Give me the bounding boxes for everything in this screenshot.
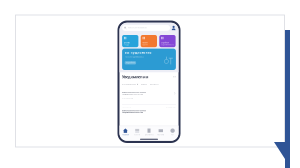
button[interactable]: Документы	[143, 128, 155, 136]
staticText: уведомление ФССП России	[122, 112, 143, 113]
staticText: Услуги	[134, 134, 140, 136]
staticText: вчера в 12:07	[166, 106, 176, 108]
staticText: Все предложения	[125, 51, 152, 54]
staticText: Подробнее	[126, 62, 135, 64]
staticText: Платежи	[157, 134, 164, 136]
staticText: Госуслуги	[122, 106, 131, 108]
staticText: уведомление ФССП России	[122, 93, 143, 95]
button[interactable]: Все	[173, 76, 176, 78]
staticText: Штрафы	[124, 42, 130, 44]
button[interactable]: Госуслуги	[122, 106, 176, 120]
staticText: Налоги	[142, 42, 148, 44]
staticText: Важное	[141, 83, 147, 85]
staticText: Все	[173, 76, 176, 78]
button[interactable]: Профиль	[171, 25, 176, 30]
staticText: Вам направлено электронное	[122, 110, 146, 112]
staticText: Уведомления	[122, 74, 148, 79]
staticText: Госуслуги для бизнеса	[125, 56, 144, 58]
button[interactable]: Услуги	[131, 128, 143, 136]
staticText: Поиск услуг и сервисов	[128, 27, 147, 29]
staticText: Вам направлено электронное	[122, 91, 146, 93]
staticText: Документы	[144, 134, 153, 136]
button[interactable]: Важное	[141, 83, 147, 85]
button[interactable]: Документы	[149, 83, 158, 85]
staticText: Судебная	[161, 42, 169, 44]
button[interactable]: Чат	[167, 128, 178, 136]
staticText: Чат	[171, 134, 174, 136]
staticText: Главная	[122, 134, 129, 136]
staticText: Документы	[149, 83, 158, 85]
staticText: и долги	[142, 44, 148, 45]
button[interactable]: Главная	[119, 128, 131, 136]
button[interactable]: Платежи	[155, 128, 167, 136]
staticText: ГИБДД	[124, 44, 129, 45]
button[interactable]: Штрафы	[122, 35, 138, 47]
staticText: Все уведомления	[122, 83, 136, 85]
button[interactable]: Судебная	[159, 35, 176, 47]
button[interactable]: Налоги	[141, 35, 157, 47]
staticText: 8 часов назад	[122, 97, 133, 99]
staticText: задолженность	[161, 44, 174, 45]
button[interactable]: Вам направлено электронное	[122, 91, 176, 107]
button[interactable]: Поиск услуг и сервисов	[122, 25, 170, 31]
button[interactable]: Все предложения	[122, 49, 176, 70]
button[interactable]: Все уведомления	[122, 83, 138, 85]
